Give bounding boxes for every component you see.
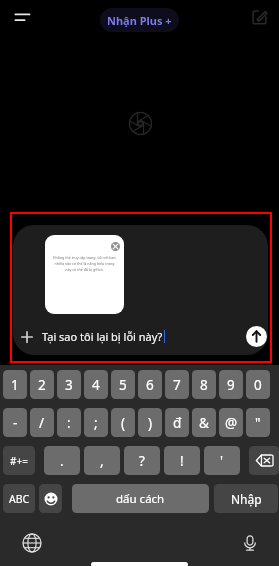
button[interactable]: ! (164, 446, 200, 475)
staticText: ABC (9, 492, 30, 506)
staticText: 3 (65, 376, 73, 394)
button[interactable]: Voice input (240, 533, 260, 553)
staticText: 1 (11, 376, 19, 394)
button[interactable]: #+= (3, 446, 35, 475)
button[interactable]: ' (204, 446, 240, 475)
button[interactable]: Send (246, 326, 267, 347)
staticText: ) (148, 414, 153, 432)
button[interactable]: 3 (57, 370, 81, 399)
staticText: Tại sao tôi lại bị lỗi này? (42, 329, 163, 344)
button[interactable]: 5 (111, 370, 135, 399)
button[interactable]: Remove attachment (111, 242, 120, 251)
button[interactable]: 9 (219, 370, 243, 399)
button[interactable]: New chat (248, 6, 271, 29)
staticText: ? (139, 452, 145, 470)
button[interactable]: 1 (3, 370, 27, 399)
button[interactable]: @ (219, 408, 243, 437)
button[interactable]: - (3, 408, 27, 437)
button[interactable]: " (246, 408, 270, 437)
button[interactable]: đ (165, 408, 189, 437)
staticText: #+= (10, 454, 28, 468)
button[interactable]: ) (138, 408, 162, 437)
button[interactable]: ? (124, 446, 160, 475)
button[interactable]: 8 (192, 370, 216, 399)
staticText: @ (225, 414, 238, 432)
button[interactable]: Add attachment (16, 326, 38, 348)
button[interactable]: . (44, 446, 80, 475)
staticText: 0 (254, 376, 262, 394)
staticText: 5 (119, 376, 127, 394)
staticText: ( (121, 414, 126, 432)
staticText: 8 (200, 376, 208, 394)
button[interactable]: Backspace (249, 446, 279, 475)
button[interactable]: 4 (84, 370, 108, 399)
button[interactable]: Menu (9, 4, 35, 30)
staticText: - (13, 414, 18, 432)
button[interactable]: dấu cách (72, 484, 209, 513)
button[interactable]: 7 (165, 370, 189, 399)
button[interactable]: 0 (246, 370, 270, 399)
staticText: Nhận Plus + (107, 13, 172, 28)
button[interactable]: ; (84, 408, 108, 437)
button[interactable]: ( (111, 408, 135, 437)
button[interactable]: & (192, 408, 216, 437)
button[interactable]: / (30, 408, 54, 437)
staticText: : (67, 414, 71, 432)
button[interactable]: Emoji (39, 484, 62, 513)
staticText: 6 (146, 376, 154, 394)
staticText: . (60, 452, 64, 470)
button[interactable]: Không thể truy cập trang. Lỗi với bạn nh… (45, 235, 124, 314)
staticText: " (255, 414, 261, 432)
staticText: & (199, 414, 209, 432)
button[interactable]: 6 (138, 370, 162, 399)
staticText: 2 (38, 376, 46, 394)
staticText: ! (180, 452, 184, 470)
staticText: ; (94, 414, 98, 432)
staticText: Không thể truy cập trang. Lỗi với bạn nh… (53, 255, 116, 272)
button[interactable]: Nhập (214, 484, 278, 513)
button[interactable]: : (57, 408, 81, 437)
button[interactable]: Nhận Plus + (100, 8, 179, 32)
staticText: dấu cách (116, 491, 165, 507)
button[interactable]: 2 (30, 370, 54, 399)
staticText: Nhập (231, 491, 262, 507)
button[interactable]: ABC (3, 484, 35, 513)
staticText: 7 (173, 376, 181, 394)
staticText: 4 (92, 376, 100, 394)
staticText: / (39, 414, 45, 432)
staticText: 9 (227, 376, 235, 394)
button[interactable]: Change language (22, 533, 42, 553)
staticText: ' (220, 452, 224, 470)
staticText: đ (173, 414, 182, 432)
button[interactable]: , (84, 446, 120, 475)
staticText: , (100, 452, 104, 470)
